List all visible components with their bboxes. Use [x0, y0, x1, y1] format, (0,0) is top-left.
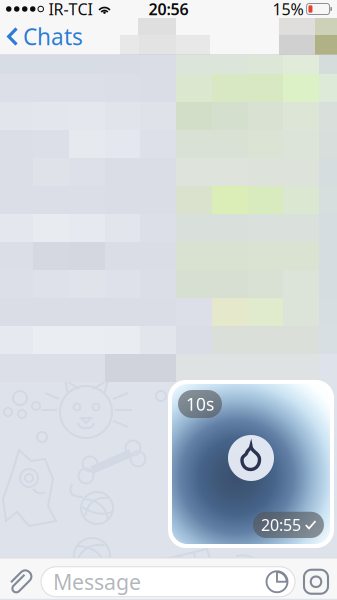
button[interactable]: Camera — [295, 562, 337, 600]
button[interactable]: Attach — [0, 562, 41, 600]
staticText: Message — [53, 568, 141, 596]
staticText: 15% — [272, 0, 303, 20]
staticText: 20:56 — [148, 0, 188, 20]
staticText: 10s — [186, 392, 214, 415]
button[interactable]: Chats — [0, 18, 93, 55]
staticText: 20:55 — [261, 514, 301, 535]
button[interactable]: Stickers — [263, 568, 291, 596]
staticText: Chats — [23, 21, 83, 51]
button[interactable]: Self-destructing photo — [168, 380, 334, 548]
staticText: IR-TCI — [48, 0, 92, 20]
